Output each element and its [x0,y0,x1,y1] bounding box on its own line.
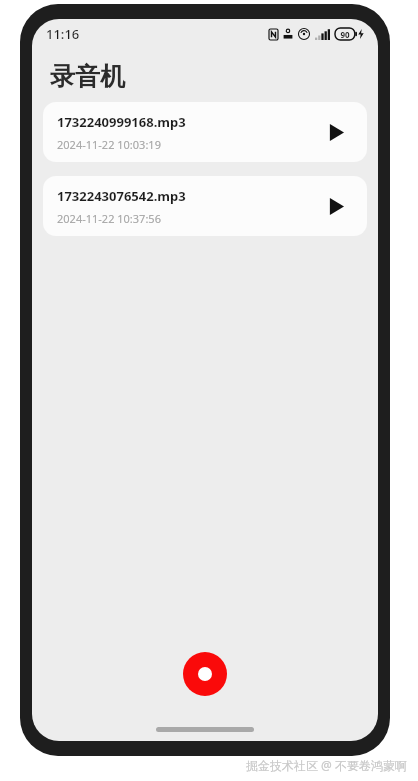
button[interactable]: Record [183,652,227,696]
button[interactable]: 1732243076542.mp3 [43,176,367,236]
button[interactable]: Play [321,117,351,147]
button[interactable]: Play [321,191,351,221]
staticText: 1732243076542.mp3 [57,187,186,205]
staticText: 1732240999168.mp3 [57,113,186,131]
staticText: 录音机 [50,61,125,92]
staticText: 90 [340,29,350,40]
staticText: 2024-11-22 10:37:56 [57,211,161,226]
button[interactable]: 1732240999168.mp3 [43,102,367,162]
staticText: 掘金技术社区 @ 不要卷鸿蒙啊 [246,757,408,773]
staticText: 11:16 [46,25,80,43]
staticText: 2024-11-22 10:03:19 [57,137,161,152]
